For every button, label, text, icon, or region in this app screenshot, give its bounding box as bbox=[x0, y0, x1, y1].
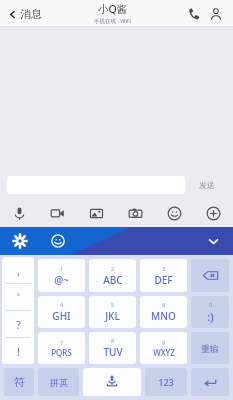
button[interactable]: Emoji bbox=[40, 227, 76, 255]
staticText: ABC bbox=[103, 273, 123, 287]
staticText: DEF bbox=[154, 273, 173, 287]
staticText: 1 bbox=[60, 265, 64, 272]
staticText: 重输 bbox=[201, 343, 219, 354]
staticText: 符 bbox=[14, 375, 25, 389]
staticText: 4 bbox=[60, 301, 64, 308]
button[interactable]: ° bbox=[2, 284, 34, 310]
staticText: 消息 bbox=[20, 7, 42, 21]
button[interactable]: 9 bbox=[140, 332, 187, 364]
button[interactable]: Camera bbox=[116, 199, 155, 227]
button[interactable]: 消息 bbox=[6, 4, 44, 24]
staticText: 手机在线 · WiFi bbox=[94, 17, 132, 25]
button[interactable]: 发送 bbox=[185, 174, 229, 196]
button[interactable]: More bbox=[194, 199, 233, 227]
button[interactable]: , bbox=[2, 257, 34, 283]
staticText: 6 bbox=[162, 301, 166, 308]
button[interactable]: Contact profile bbox=[205, 3, 227, 25]
staticText: ° bbox=[17, 292, 20, 302]
staticText: 3 bbox=[162, 265, 166, 272]
staticText: :) bbox=[207, 309, 214, 324]
staticText: 8 bbox=[111, 337, 115, 344]
button[interactable]: ? bbox=[2, 311, 34, 337]
button[interactable]: Keyboard settings bbox=[0, 227, 40, 255]
button[interactable]: 6 bbox=[140, 296, 187, 328]
staticText: MNO bbox=[151, 309, 176, 323]
button[interactable]: 1 bbox=[38, 259, 85, 292]
button[interactable]: Photo bbox=[77, 199, 116, 227]
staticText: ? bbox=[16, 317, 21, 332]
staticText: 发送 bbox=[199, 180, 215, 190]
staticText: 0 bbox=[209, 301, 213, 308]
staticText: 拼英 bbox=[50, 377, 68, 388]
staticText: JKL bbox=[105, 309, 120, 323]
staticText: ! bbox=[17, 344, 20, 359]
button[interactable]: Video bbox=[38, 199, 77, 227]
button[interactable]: Call bbox=[183, 3, 205, 25]
button[interactable]: Voice message bbox=[0, 199, 38, 227]
staticText: 9 bbox=[162, 339, 166, 346]
staticText: 小Q酱 bbox=[98, 2, 128, 16]
button[interactable]: 4 bbox=[38, 296, 85, 328]
button[interactable]: 符 bbox=[4, 368, 34, 396]
button[interactable]: 3 bbox=[140, 259, 187, 292]
button[interactable]: Emoji bbox=[155, 199, 194, 227]
button[interactable]: 重输 bbox=[191, 332, 229, 364]
button[interactable]: 0 bbox=[191, 296, 229, 328]
staticText: 2 bbox=[111, 265, 115, 272]
button[interactable]: ! bbox=[2, 338, 34, 364]
button[interactable] bbox=[191, 259, 229, 292]
staticText: 123 bbox=[158, 376, 174, 388]
button[interactable]: Hide keyboard bbox=[193, 227, 233, 255]
staticText: 7 bbox=[60, 339, 64, 346]
button[interactable] bbox=[83, 368, 141, 396]
button[interactable]: 123 bbox=[145, 368, 187, 396]
staticText: TUV bbox=[103, 345, 123, 359]
button[interactable]: 5 bbox=[89, 296, 136, 328]
button[interactable]: 7 bbox=[38, 332, 85, 364]
staticText: 5 bbox=[111, 301, 115, 308]
staticText: @~ bbox=[54, 273, 69, 287]
staticText: WXYZ bbox=[153, 347, 175, 358]
staticText: , bbox=[17, 263, 20, 278]
staticText: PQRS bbox=[51, 347, 72, 358]
button[interactable] bbox=[191, 368, 229, 396]
button[interactable]: 拼英 bbox=[38, 368, 79, 396]
button[interactable]: 8 bbox=[89, 332, 136, 364]
button[interactable]: 2 bbox=[89, 259, 136, 292]
staticText: GHI bbox=[52, 309, 71, 323]
